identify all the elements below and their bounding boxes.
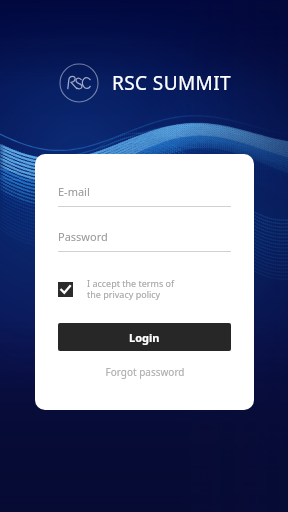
- button[interactable]: Forgot password: [58, 365, 231, 379]
- button[interactable]: Password: [58, 229, 231, 252]
- staticText: I accept the terms of the privacy policy: [87, 277, 175, 301]
- staticText: Login: [129, 330, 160, 345]
- button[interactable]: Login: [58, 323, 231, 351]
- other: Accept terms checkbox: [58, 282, 73, 297]
- staticText: RSC SUMMIT: [112, 70, 231, 96]
- staticText: Password: [58, 229, 108, 244]
- button[interactable]: E-mail: [58, 184, 231, 207]
- staticText: Forgot password: [105, 365, 185, 379]
- button[interactable]: Accept terms checkbox: [58, 277, 231, 301]
- staticText: E-mail: [58, 184, 90, 199]
